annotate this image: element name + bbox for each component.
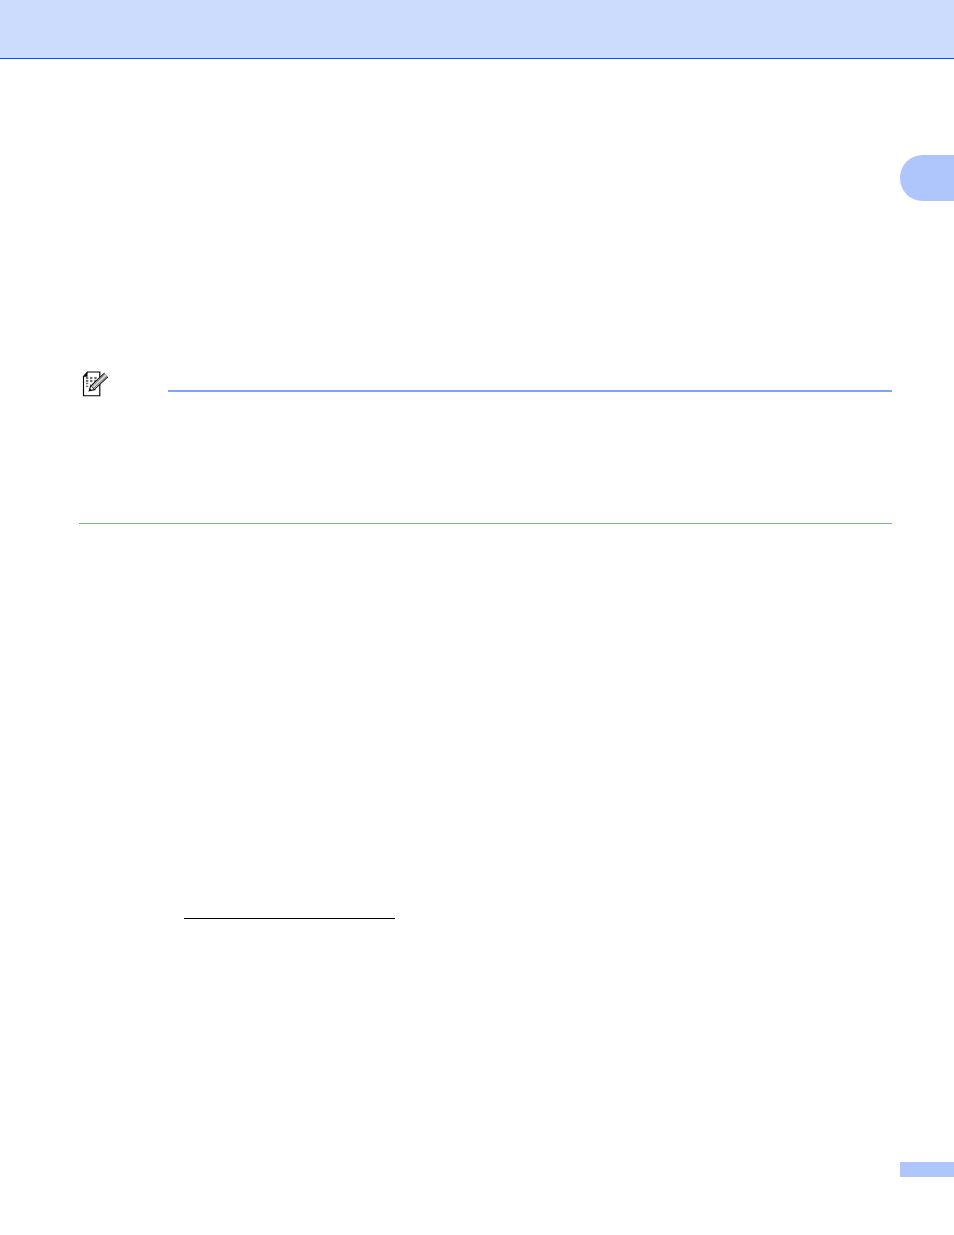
- button[interactable]: Chapter tab: [900, 155, 954, 201]
- button[interactable]: Note callout: [79, 371, 892, 524]
- button[interactable]: Chapter header: [0, 0, 954, 59]
- other: Note: [83, 371, 109, 397]
